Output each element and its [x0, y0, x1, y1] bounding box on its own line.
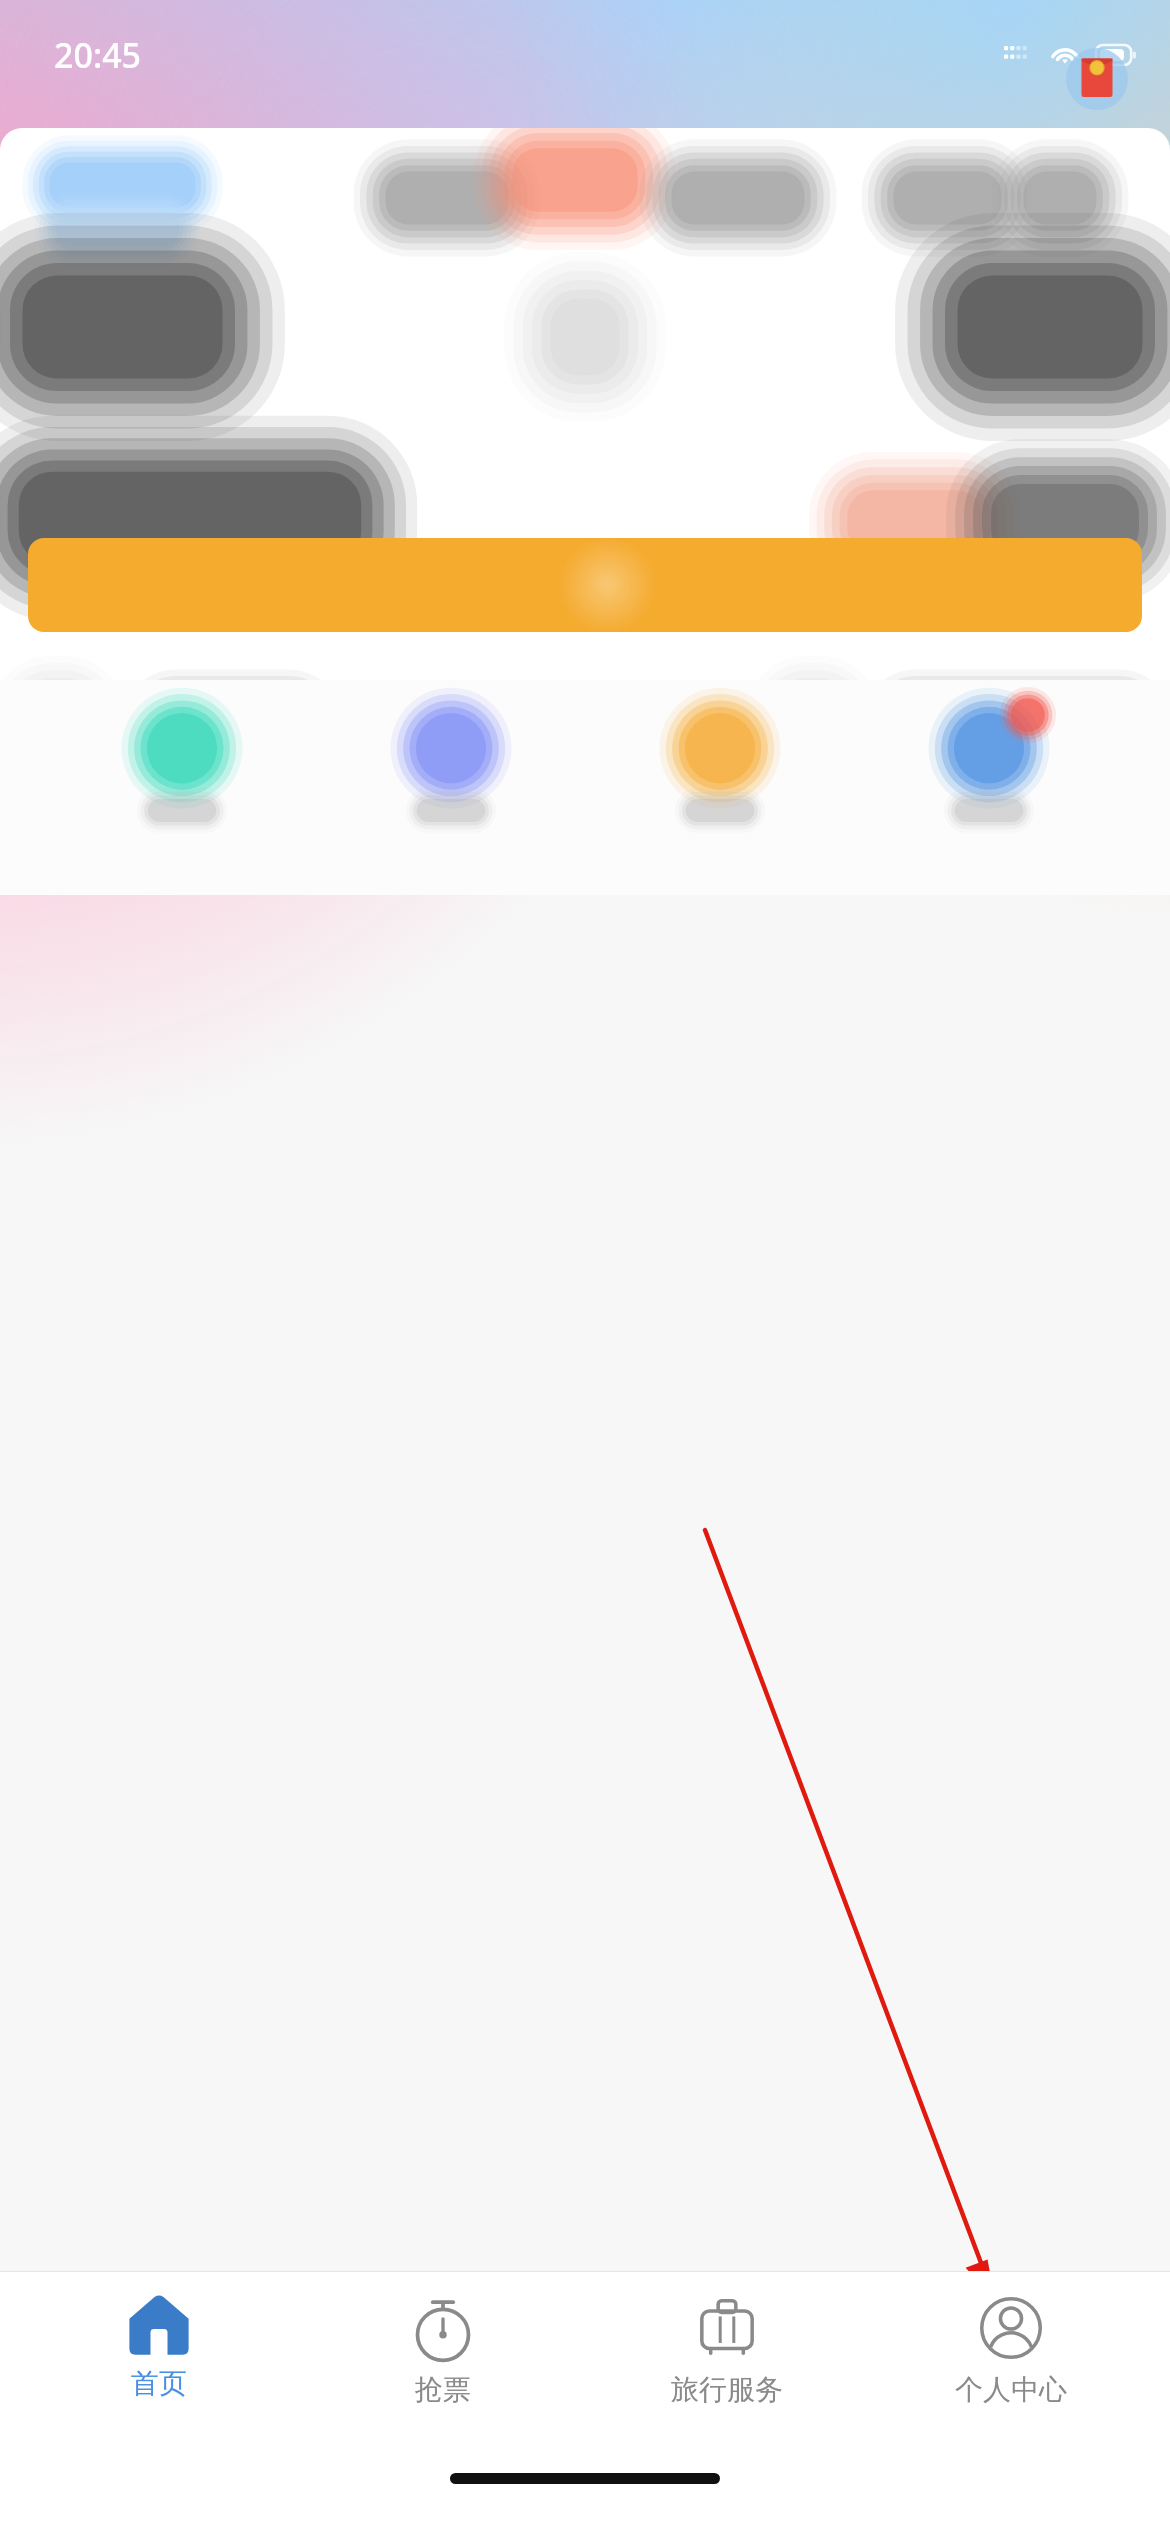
button[interactable]: 旅行服务: [602, 2272, 852, 2442]
button[interactable]: 抢票: [318, 2272, 568, 2442]
button[interactable]: 快捷入口: [363, 706, 538, 824]
staticText: 20:45: [54, 32, 142, 78]
button[interactable]: 快捷入口: [94, 706, 269, 824]
button[interactable]: 快捷入口: [901, 706, 1076, 824]
button[interactable]: 快捷入口: [632, 706, 807, 824]
button[interactable]: 首页: [34, 2272, 284, 2442]
staticText: 旅行服务: [671, 2372, 783, 2407]
staticText: 抢票: [415, 2372, 471, 2407]
button[interactable]: 查询: [28, 538, 1142, 632]
button[interactable]: 个人中心: [886, 2272, 1136, 2442]
staticText: 个人中心: [955, 2372, 1067, 2407]
staticText: 首页: [131, 2366, 187, 2401]
